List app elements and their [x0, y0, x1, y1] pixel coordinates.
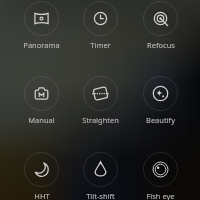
staticText: Fish eye [146, 191, 175, 200]
button[interactable]: Timer [70, 1, 130, 53]
staticText: Timer [90, 40, 111, 50]
button[interactable]: Tilt-shift [70, 152, 130, 200]
staticText: HHT [34, 191, 50, 200]
staticText: Refocus [147, 40, 175, 50]
staticText: Beautify [146, 115, 175, 125]
button[interactable]: Beautify [130, 76, 190, 128]
button[interactable]: Refocus [130, 1, 190, 53]
button[interactable]: Manual [11, 76, 71, 128]
button[interactable]: Straighten [70, 76, 130, 128]
staticText: Panorama [23, 40, 60, 50]
button[interactable]: Panorama [11, 1, 71, 53]
staticText: Manual [28, 115, 55, 125]
staticText: Tilt-shift [86, 191, 115, 200]
staticText: Straighten [82, 115, 119, 125]
button[interactable]: HHT [11, 152, 71, 200]
button[interactable]: Fish eye [130, 152, 190, 200]
